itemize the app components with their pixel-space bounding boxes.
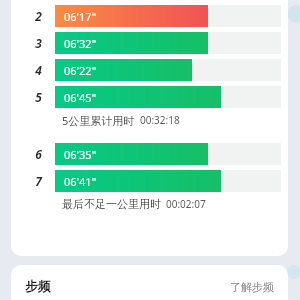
staticText: 06'41" [64,174,97,189]
staticText: 2 [35,8,42,24]
staticText: 7 [35,173,42,189]
staticText: 最后不足一公里用时 [62,197,161,211]
button[interactable]: 4 [11,54,288,81]
staticText: 6 [35,146,42,162]
staticText: 06'32" [64,36,97,51]
staticText: 00:32:18 [140,113,180,127]
button[interactable]: 6 [11,138,288,165]
button[interactable]: 5 [11,81,288,108]
staticText: 06'35" [64,147,97,162]
button[interactable]: 了解步频 [230,280,274,300]
staticText: 3 [35,35,42,51]
staticText: 了解步频 [230,280,274,294]
staticText: 5公里累计用时 [62,113,135,128]
button[interactable]: 2 [11,0,288,27]
staticText: 步频 [25,278,51,294]
staticText: 5 [35,89,42,105]
staticText: 00:02:07 [166,197,206,211]
button[interactable]: 7 [11,165,288,192]
staticText: 06'45" [64,90,97,105]
staticText: 06'22" [64,63,97,78]
staticText: 4 [35,62,42,78]
staticText: 06'17" [64,9,97,24]
button[interactable]: 3 [11,27,288,54]
